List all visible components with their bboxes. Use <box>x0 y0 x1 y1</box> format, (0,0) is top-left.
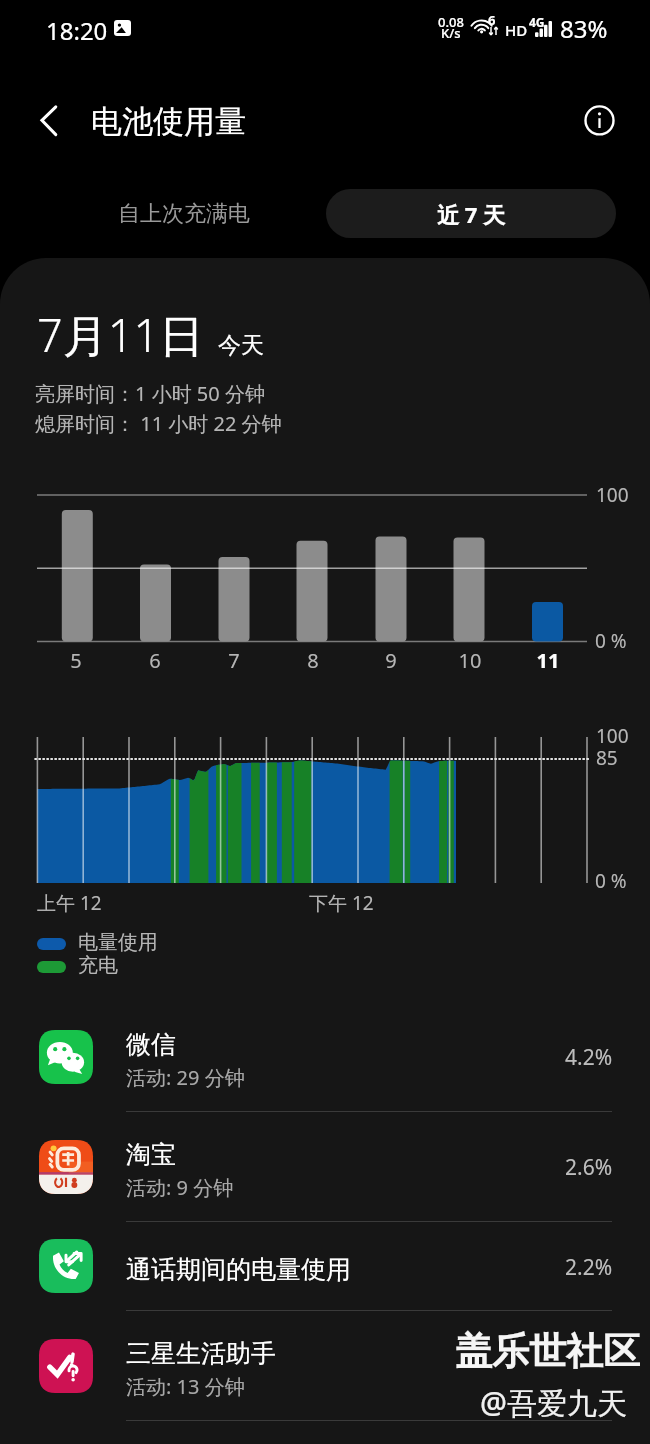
staticText: 活动: 9 分钟 <box>126 1174 234 1201</box>
staticText: 6 <box>143 647 167 674</box>
button[interactable]: Back <box>26 98 72 144</box>
staticText: 电量使用 <box>78 930 158 955</box>
staticText: 0.08 <box>438 13 464 31</box>
button[interactable]: 微信 <box>0 1002 650 1112</box>
staticText: 100 <box>596 482 629 508</box>
staticText: 0 % <box>595 628 627 654</box>
staticText: HD <box>505 20 528 40</box>
staticText: 100 <box>596 723 629 749</box>
staticText: 近 7 天 <box>437 199 506 229</box>
button[interactable]: Information <box>577 98 622 143</box>
button[interactable]: 近 7 天 <box>326 189 616 238</box>
staticText: 盖乐世社区 <box>455 1328 640 1375</box>
staticText: @吾爱九天 <box>480 1382 627 1423</box>
staticText: K/s <box>441 24 461 42</box>
staticText: 三星生活助手 <box>126 1338 276 1369</box>
staticText: 7 <box>222 647 246 674</box>
staticText: 5 <box>64 647 88 674</box>
staticText: 7月11日 <box>37 304 205 365</box>
button[interactable]: 自上次充满电 <box>39 189 329 238</box>
staticText: 上午 12 <box>37 890 102 916</box>
staticText: 淘宝 <box>126 1139 176 1170</box>
staticText: 微信 <box>126 1029 176 1060</box>
staticText: 通话期间的电量使用 <box>126 1254 351 1285</box>
staticText: 6 <box>488 11 496 29</box>
staticText: 8 <box>301 647 325 674</box>
staticText: 10 <box>458 647 482 674</box>
staticText: 电池使用量 <box>91 102 246 141</box>
staticText: 熄屏时间： 11 小时 22 分钟 <box>35 410 282 437</box>
staticText: 充电 <box>78 953 118 978</box>
staticText: 18:20 <box>46 14 108 47</box>
staticText: 85 <box>596 745 618 771</box>
staticText: 自上次充满电 <box>118 200 250 228</box>
staticText: 活动: 29 分钟 <box>126 1064 245 1091</box>
staticText: 今天 <box>218 331 264 360</box>
staticText: 4G <box>529 14 545 30</box>
staticText: 亮屏时间：1 小时 50 分钟 <box>35 380 265 407</box>
staticText: 0 % <box>595 868 627 894</box>
staticText: 11 <box>536 647 560 674</box>
button[interactable]: 通话期间的电量使用 <box>0 1222 650 1311</box>
staticText: 下午 12 <box>309 890 374 916</box>
button[interactable]: 淘宝 <box>0 1112 650 1222</box>
staticText: 9 <box>379 647 403 674</box>
staticText: 2.2% <box>565 1253 613 1282</box>
staticText: 83% <box>560 12 608 45</box>
staticText: 2.6% <box>565 1153 613 1182</box>
staticText: 活动: 13 分钟 <box>126 1373 245 1400</box>
staticText: 4.2% <box>565 1043 613 1072</box>
button[interactable]: 三星生活助手 <box>0 1311 650 1421</box>
